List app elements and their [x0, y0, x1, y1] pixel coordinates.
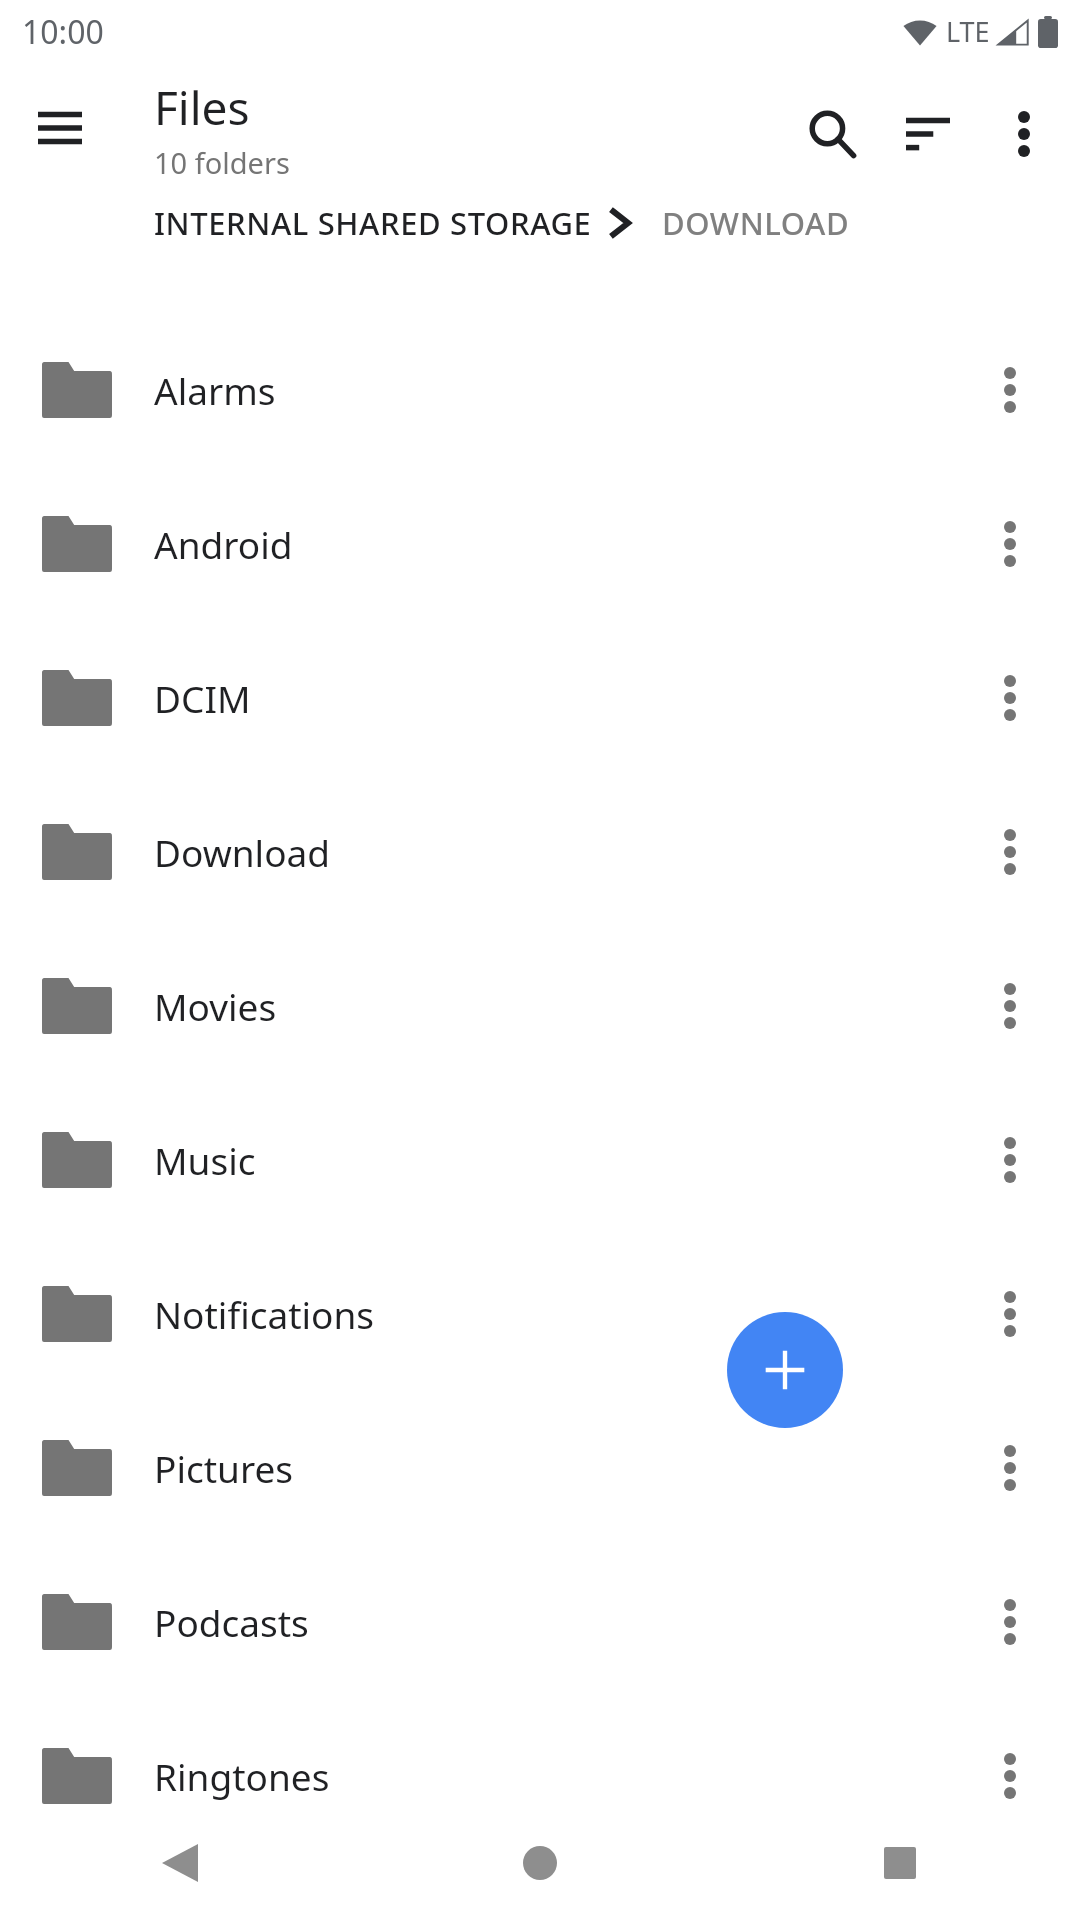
button[interactable]: More options for Music: [962, 1083, 1058, 1237]
staticText: Alarms: [154, 365, 962, 415]
staticText: LTE: [946, 13, 990, 50]
button[interactable]: Music: [0, 1083, 1080, 1237]
button[interactable]: Sort: [880, 86, 976, 182]
staticText: Movies: [154, 981, 962, 1031]
button[interactable]: INTERNAL SHARED STORAGE: [154, 190, 592, 256]
button[interactable]: DCIM: [0, 621, 1080, 775]
staticText: DCIM: [154, 673, 962, 723]
button[interactable]: DOWNLOAD: [662, 190, 850, 256]
button[interactable]: More options for Android: [962, 467, 1058, 621]
button[interactable]: Movies: [0, 929, 1080, 1083]
button[interactable]: Create new: [727, 1312, 843, 1428]
button[interactable]: Search: [784, 86, 880, 182]
button[interactable]: Notifications: [0, 1237, 1080, 1391]
staticText: Pictures: [154, 1443, 962, 1493]
button[interactable]: Alarms: [0, 313, 1080, 467]
button[interactable]: Home: [360, 1805, 720, 1920]
button[interactable]: More options for Movies: [962, 929, 1058, 1083]
button[interactable]: More options for Alarms: [962, 313, 1058, 467]
button[interactable]: Ringtones: [0, 1699, 1080, 1853]
staticText: Music: [154, 1135, 962, 1185]
button[interactable]: Android: [0, 467, 1080, 621]
button[interactable]: Pictures: [0, 1391, 1080, 1545]
staticText: 10:00: [22, 10, 104, 54]
staticText: 10 folders: [154, 143, 290, 182]
button[interactable]: Recent apps: [720, 1805, 1080, 1920]
button[interactable]: Podcasts: [0, 1545, 1080, 1699]
staticText: Android: [154, 519, 962, 569]
staticText: Notifications: [154, 1289, 962, 1339]
button[interactable]: Download: [0, 775, 1080, 929]
staticText: Files: [154, 76, 250, 139]
staticText: Download: [154, 827, 962, 877]
button[interactable]: More options for DCIM: [962, 621, 1058, 775]
button[interactable]: Open navigation drawer: [18, 86, 102, 170]
button[interactable]: More options: [976, 86, 1072, 182]
button[interactable]: More options for Podcasts: [962, 1545, 1058, 1699]
button[interactable]: More options for Pictures: [962, 1391, 1058, 1545]
staticText: DOWNLOAD: [662, 202, 850, 244]
staticText: Podcasts: [154, 1597, 962, 1647]
staticText: INTERNAL SHARED STORAGE: [154, 202, 592, 244]
button[interactable]: Back: [0, 1805, 360, 1920]
button[interactable]: More options for Ringtones: [962, 1699, 1058, 1853]
button[interactable]: More options for Notifications: [962, 1237, 1058, 1391]
button[interactable]: More options for Download: [962, 775, 1058, 929]
staticText: Ringtones: [154, 1751, 962, 1801]
